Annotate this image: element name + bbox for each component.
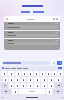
button[interactable] [15,71,21,76]
button[interactable] [27,77,33,82]
button[interactable] [58,71,63,76]
button[interactable] [12,89,18,94]
button[interactable]: Send [57,61,62,65]
button[interactable] [27,83,33,88]
button[interactable] [21,77,26,82]
button[interactable] [4,39,60,46]
button[interactable] [4,31,60,38]
button[interactable] [4,22,60,30]
button[interactable]: Enter [58,67,62,69]
button[interactable] [55,77,61,82]
button[interactable] [6,25,58,29]
button[interactable] [41,83,47,88]
button[interactable]: Keyboard settings [1,96,3,98]
button[interactable] [1,71,7,76]
button[interactable] [34,71,39,76]
button[interactable] [15,77,20,82]
button[interactable] [48,83,54,88]
button[interactable]: Input method [2,67,4,69]
button[interactable] [8,71,14,76]
button[interactable] [9,77,14,82]
button[interactable] [46,71,51,76]
button[interactable] [6,34,58,37]
button[interactable] [48,77,54,82]
button[interactable]: Space [19,89,45,94]
button[interactable]: Add attachment [52,61,56,65]
button[interactable] [28,71,33,76]
button[interactable] [46,89,52,94]
button[interactable] [9,83,14,88]
button[interactable] [34,77,40,82]
button[interactable]: Shift [1,83,8,88]
button[interactable] [52,71,57,76]
button[interactable] [40,71,45,76]
button[interactable]: Enter [53,89,63,94]
button[interactable] [15,83,20,88]
button[interactable] [3,77,8,82]
button[interactable] [6,42,58,45]
button[interactable] [21,83,26,88]
button[interactable] [41,77,47,82]
button[interactable] [22,71,27,76]
button[interactable]: Symbols [1,89,11,94]
button[interactable] [34,83,40,88]
button[interactable]: Backspace [55,83,63,88]
button[interactable] [2,61,50,65]
button[interactable]: Hide keyboard [61,96,63,98]
button[interactable]: Page title [21,4,44,8]
